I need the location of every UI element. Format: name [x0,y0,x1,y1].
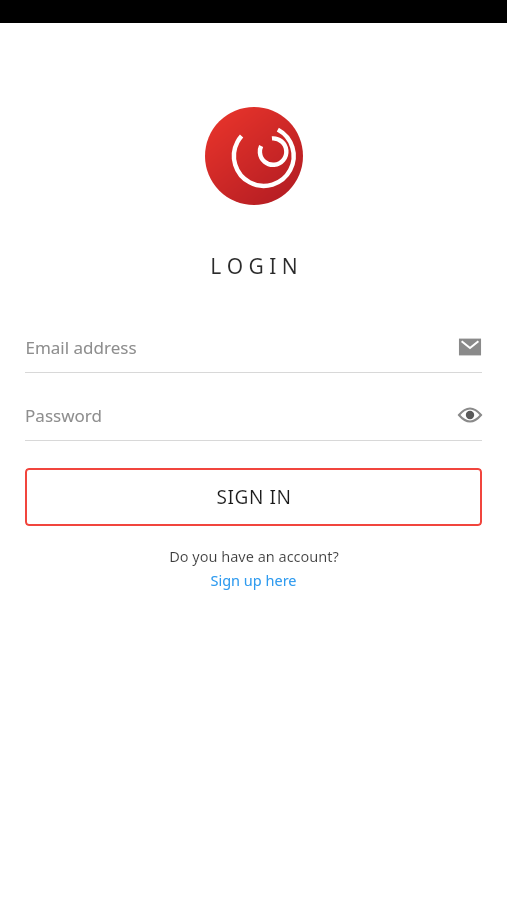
button[interactable]: Email [25,322,482,373]
staticText: L O G I N [210,252,298,281]
button[interactable]: Sign up here [210,570,297,590]
button[interactable]: Show password [25,390,482,441]
staticText: Password [25,404,102,427]
button[interactable]: SIGN IN [25,468,482,526]
staticText: Do you have an account? [169,546,339,566]
staticText: Sign up here [210,570,297,590]
staticText: Email address [25,336,137,359]
staticText: SIGN IN [216,484,292,510]
